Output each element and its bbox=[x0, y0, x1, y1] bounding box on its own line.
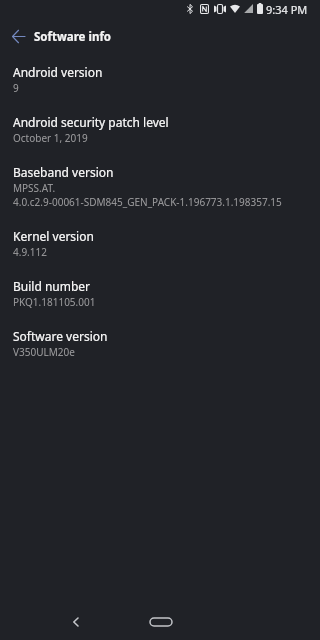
button[interactable]: Back bbox=[0, 18, 36, 54]
staticText: Kernel version bbox=[13, 228, 94, 244]
staticText: 9 bbox=[13, 81, 19, 95]
button[interactable]: Home bbox=[146, 614, 176, 630]
button[interactable]: Software version bbox=[0, 320, 320, 370]
staticText: Android security patch level bbox=[13, 114, 169, 130]
staticText: PKQ1.181105.001 bbox=[13, 295, 96, 309]
button[interactable]: Back bbox=[63, 610, 87, 634]
staticText: 4.9.112 bbox=[13, 245, 47, 259]
staticText: V350ULM20e bbox=[13, 345, 75, 359]
button[interactable]: Build number bbox=[0, 270, 320, 320]
button[interactable]: Baseband version bbox=[0, 156, 320, 220]
staticText: 9:34 PM bbox=[266, 2, 308, 17]
button[interactable]: Android version bbox=[0, 56, 320, 106]
button[interactable]: Kernel version bbox=[0, 220, 320, 270]
staticText: Build number bbox=[13, 278, 91, 294]
staticText: MPSS.AT. 4.0.c2.9-00061-SDM845_GEN_PACK-… bbox=[13, 181, 282, 208]
staticText: Software version bbox=[13, 328, 108, 344]
staticText: October 1, 2019 bbox=[13, 131, 88, 145]
staticText: Android version bbox=[13, 64, 103, 80]
button[interactable]: Android security patch level bbox=[0, 106, 320, 156]
staticText: Software info bbox=[34, 29, 112, 45]
staticText: Baseband version bbox=[13, 164, 114, 180]
